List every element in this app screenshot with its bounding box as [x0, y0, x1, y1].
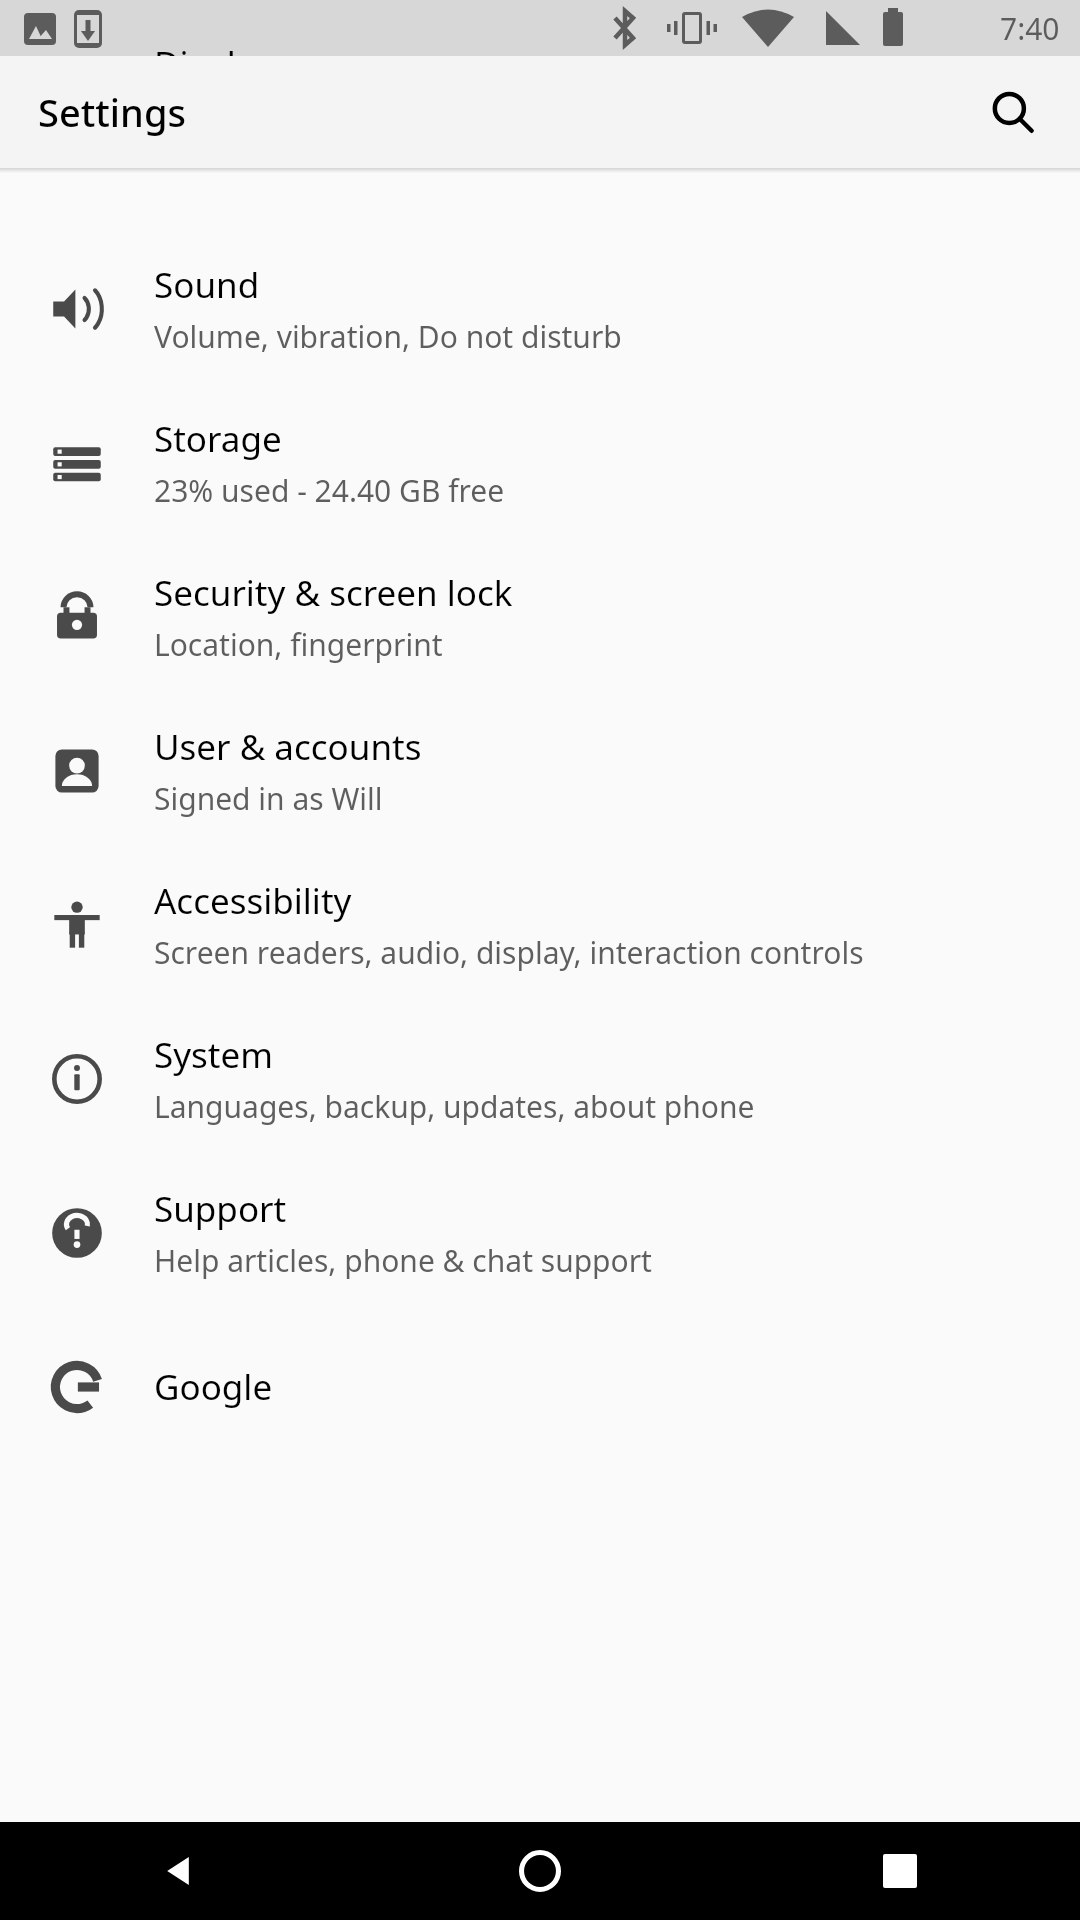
staticText: Volume, vibration, Do not disturb — [154, 316, 622, 357]
button[interactable]: Accessibility — [0, 848, 1080, 1002]
staticText: Wallpaper, sleep, font size — [154, 94, 517, 135]
staticText: Location, fingerprint — [154, 624, 443, 665]
button[interactable]: User & accounts — [0, 694, 1080, 848]
button[interactable]: Home — [360, 1822, 720, 1920]
staticText: Languages, backup, updates, about phone — [154, 1086, 755, 1127]
button[interactable]: Google — [0, 1310, 1080, 1464]
staticText: 7:40 — [1000, 8, 1060, 49]
staticText: Help articles, phone & chat support — [154, 1240, 652, 1281]
staticText: 23% used - 24.40 GB free — [154, 470, 505, 511]
staticText: System — [154, 1031, 273, 1079]
button[interactable]: Security & screen lock — [0, 540, 1080, 694]
button[interactable]: Recents — [720, 1822, 1080, 1920]
staticText: Security & screen lock — [154, 569, 513, 617]
staticText: Screen readers, audio, display, interact… — [154, 932, 864, 973]
staticText: Signed in as Will — [154, 778, 383, 819]
button[interactable]: Sound — [0, 232, 1080, 386]
staticText: Storage — [154, 415, 282, 463]
button[interactable]: Storage — [0, 386, 1080, 540]
button[interactable]: Back — [0, 1822, 360, 1920]
staticText: Support — [154, 1185, 287, 1233]
button[interactable]: Search — [964, 64, 1060, 160]
staticText: Settings — [38, 86, 186, 138]
staticText: User & accounts — [154, 723, 422, 771]
staticText: Sound — [154, 261, 260, 309]
button[interactable]: Support — [0, 1156, 1080, 1310]
staticText: Google — [154, 1363, 273, 1411]
staticText: Display — [154, 40, 274, 88]
button[interactable]: System — [0, 1002, 1080, 1156]
staticText: Accessibility — [154, 877, 352, 925]
